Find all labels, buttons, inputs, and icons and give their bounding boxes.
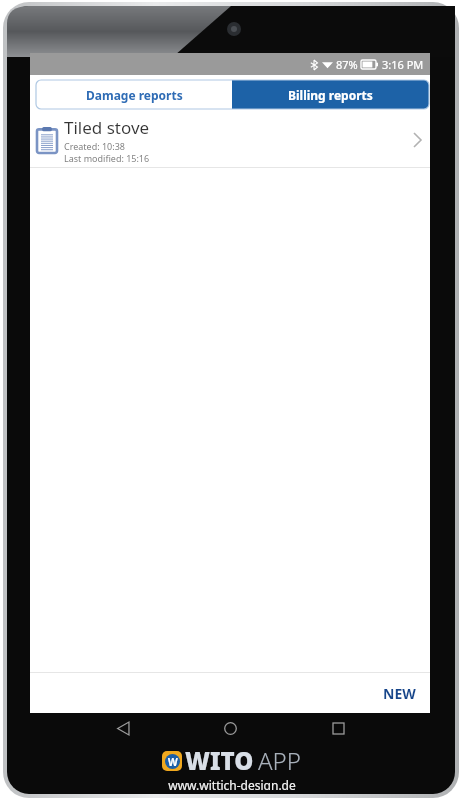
button[interactable]: Tiled stove [30, 113, 430, 167]
staticText: Created: 10:38 [64, 140, 125, 152]
staticText: www.wittich-design.de [168, 777, 296, 790]
staticText: Tiled stove [64, 116, 150, 139]
staticText: Billing reports [288, 87, 373, 103]
staticText: APP [258, 744, 301, 777]
staticText: W [168, 755, 178, 769]
staticText: Damage reports [86, 87, 183, 103]
staticText: Last modified: 15:16 [64, 152, 150, 164]
button[interactable]: Damage reports [36, 80, 232, 109]
staticText: 87% [336, 57, 358, 72]
button[interactable]: Back [108, 713, 138, 743]
button[interactable]: Recent apps [323, 713, 353, 743]
button[interactable]: Billing reports [232, 80, 429, 109]
staticText: 3:16 PM [382, 57, 424, 72]
button[interactable]: Home [215, 713, 245, 743]
staticText: WITO [185, 744, 254, 777]
button[interactable]: NEW [369, 676, 430, 711]
staticText: NEW [383, 684, 416, 703]
